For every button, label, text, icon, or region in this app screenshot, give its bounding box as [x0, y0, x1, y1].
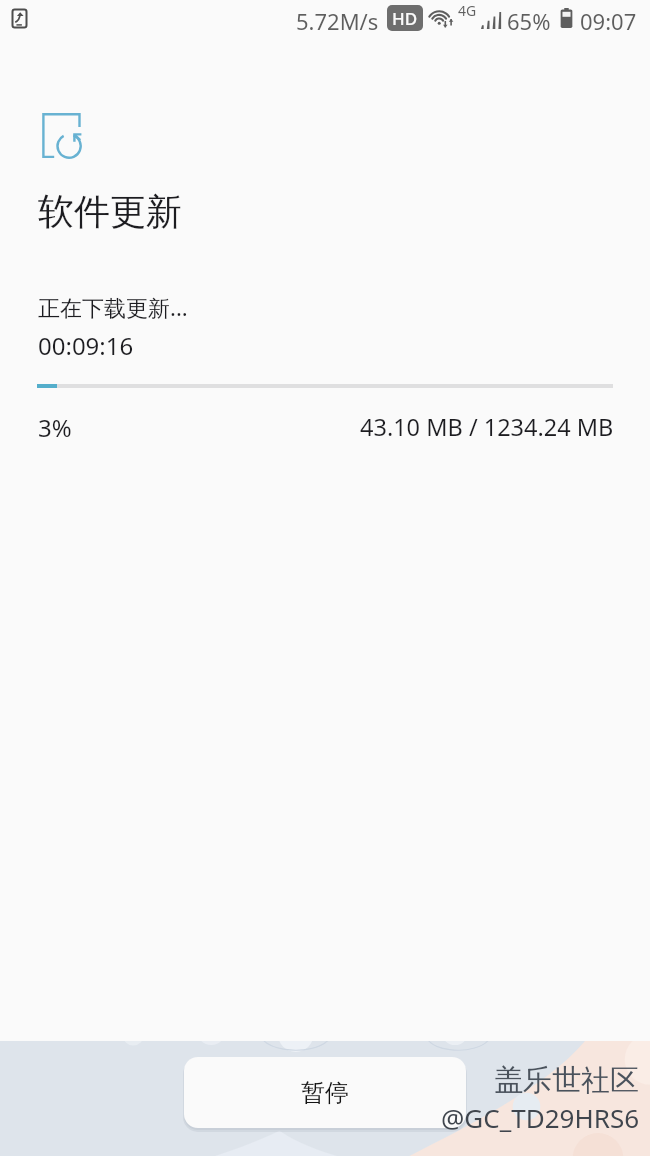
- staticText: @GC_TD29HRS6: [441, 1100, 640, 1135]
- staticText: 4G: [458, 1, 477, 20]
- staticText: 暂停: [301, 1078, 349, 1108]
- staticText: HD: [392, 7, 418, 30]
- button[interactable]: 暂停: [184, 1057, 466, 1128]
- staticText: 43.10 MB / 1234.24 MB: [360, 411, 614, 443]
- staticText: 正在下载更新...: [38, 292, 188, 322]
- staticText: 盖乐世社区: [494, 1062, 639, 1099]
- staticText: 3%: [38, 411, 72, 444]
- staticText: 00:09:16: [38, 329, 134, 362]
- staticText: 09:07: [580, 6, 637, 36]
- staticText: 65%: [507, 6, 551, 36]
- staticText: 软件更新: [38, 189, 182, 234]
- other: Screen recorder: [11, 8, 28, 29]
- staticText: 5.72M/s: [296, 6, 379, 36]
